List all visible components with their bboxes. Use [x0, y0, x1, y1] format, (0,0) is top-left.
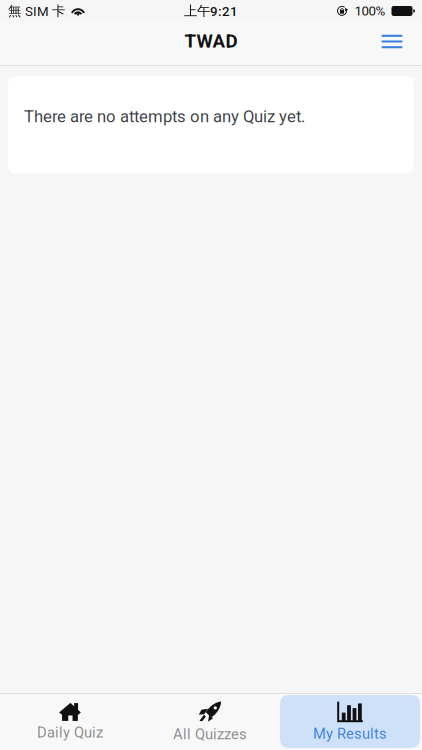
staticText: There are no attempts on any Quiz yet. — [24, 107, 305, 126]
button[interactable]: My Results — [280, 695, 420, 748]
staticText: My Results — [313, 725, 387, 742]
staticText: 100% — [354, 3, 385, 19]
button[interactable]: Menu — [371, 22, 413, 65]
staticText: Daily Quiz — [37, 724, 103, 741]
staticText: 上午9:21 — [184, 3, 238, 19]
staticText: TWAD — [184, 30, 237, 52]
staticText: 無 SIM 卡 — [8, 3, 65, 19]
button[interactable]: All Quizzes — [140, 695, 280, 748]
staticText: All Quizzes — [173, 726, 247, 743]
button[interactable]: Daily Quiz — [0, 695, 140, 748]
